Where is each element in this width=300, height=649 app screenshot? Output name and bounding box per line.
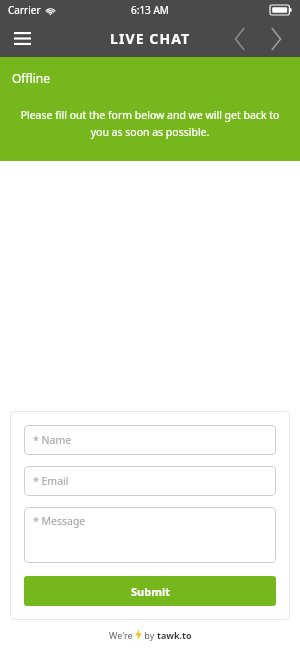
button[interactable]: Menu [0,20,44,57]
button[interactable]: We're [0,620,300,649]
staticText: Offline [12,70,51,86]
button[interactable]: Back [222,20,258,57]
staticText: by [142,629,157,641]
button[interactable]: Submit [24,576,276,606]
button[interactable]: * Name [24,425,276,455]
button[interactable]: * Message [24,507,276,563]
button[interactable]: Forward [258,20,294,57]
staticText: We're [109,629,135,641]
staticText: * Name [33,433,72,447]
staticText: tawk.to [157,629,192,641]
staticText: LIVE CHAT [110,29,191,48]
staticText: * Message [33,514,86,528]
staticText: Submit [131,584,170,599]
staticText: Please fill out the form below and we wi… [18,108,282,139]
staticText: 6:13 AM [131,3,169,17]
staticText: Carrier [8,3,41,17]
button[interactable]: * Email [24,466,276,496]
staticText: * Email [33,474,69,488]
